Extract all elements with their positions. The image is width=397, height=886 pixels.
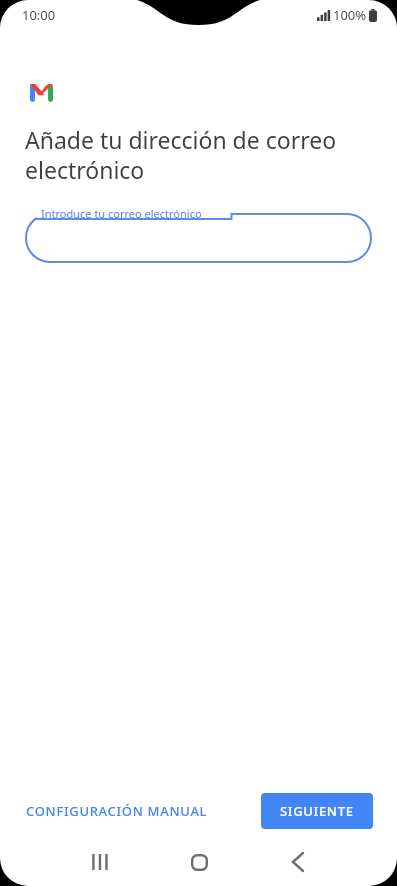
staticText: Introduce tu correo electrónico [41,206,202,221]
button[interactable]: Recents [77,840,121,884]
staticText: 10:00 [22,6,56,24]
staticText: SIGUIENTE [280,802,354,820]
button[interactable]: Back [276,840,320,884]
staticText: Añade tu dirección de correo electrónico [25,124,337,186]
button[interactable]: SIGUIENTE [261,793,373,829]
button[interactable]: Introduce tu correo electrónico [25,205,372,263]
button[interactable]: CONFIGURACIÓN MANUAL [14,793,220,829]
button[interactable]: Home [177,840,221,884]
staticText: 100% [333,6,367,24]
staticText: CONFIGURACIÓN MANUAL [26,802,208,820]
